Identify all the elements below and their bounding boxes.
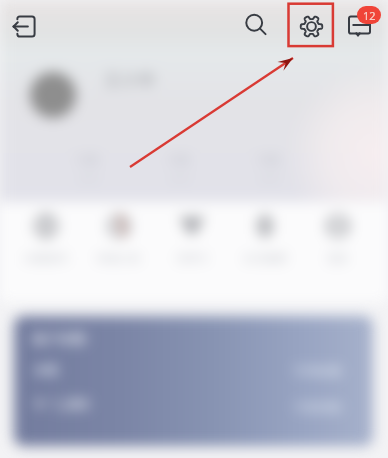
button[interactable]: 信用卡 — [158, 212, 226, 265]
button[interactable]: Search — [239, 8, 273, 42]
staticText: 12 — [363, 8, 376, 23]
button[interactable]: Messages — [345, 2, 385, 42]
button[interactable]: 转账汇款 — [85, 212, 153, 265]
staticText: 账户余额 · — [33, 329, 92, 347]
button[interactable]: Exit — [6, 8, 42, 44]
staticText: 余额 — [34, 362, 58, 377]
button[interactable]: 生活缴费 — [231, 212, 299, 265]
button[interactable]: 余额查询 — [12, 212, 80, 265]
button[interactable]: Settings — [294, 9, 328, 43]
staticText: ￥ 1,280 — [32, 393, 90, 413]
button[interactable]: 更多 — [304, 212, 372, 265]
staticText: 可用金额 — [293, 363, 341, 378]
button[interactable]: 账户余额 · — [14, 316, 373, 446]
staticText: 计划还款 — [294, 399, 342, 414]
